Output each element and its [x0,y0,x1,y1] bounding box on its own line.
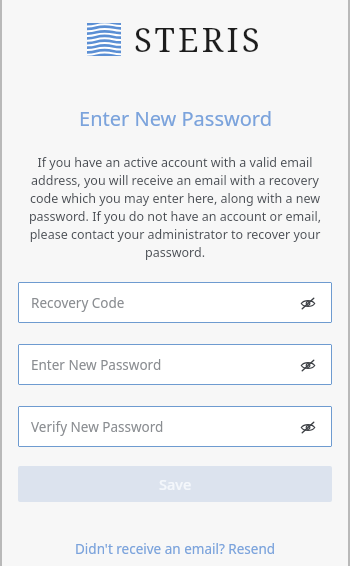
button[interactable]: Show Recovery Code [297,292,319,314]
button[interactable]: Recovery Code [18,282,332,323]
staticText: Didn't receive an email? Resend [75,540,276,558]
button[interactable]: Verify New Password [18,406,332,447]
staticText: If you have an active account with a val… [18,154,332,260]
staticText: Enter New Password [31,356,162,374]
button[interactable]: Didn't receive an email? Resend [69,536,282,562]
staticText: STERIS [134,17,263,62]
button[interactable]: Enter New Password [18,344,332,385]
button[interactable]: Show Verify New Password [297,416,319,438]
staticText: Recovery Code [31,294,125,312]
staticText: Verify New Password [31,418,164,436]
staticText: Enter New Password [79,105,272,132]
button[interactable]: Show New Password [297,354,319,376]
staticText: Save [159,474,192,494]
